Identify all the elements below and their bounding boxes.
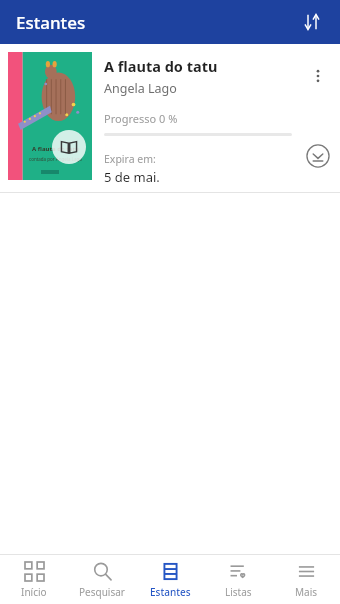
button[interactable]: Download [300, 138, 336, 174]
staticText: Estantes [16, 11, 86, 34]
staticText: Expira em: [104, 152, 156, 166]
button[interactable]: Estantes [136, 555, 204, 604]
staticText: Angela Lago [104, 80, 177, 97]
button[interactable]: A flauta do tatu [0, 44, 340, 192]
staticText: 5 de mai. [104, 168, 160, 184]
staticText: A flauta do tatu [104, 56, 218, 76]
button[interactable]: Listas [204, 555, 272, 604]
button[interactable]: Início [0, 555, 68, 604]
staticText: Pesquisar [79, 585, 125, 599]
button[interactable]: More options [300, 58, 336, 94]
button[interactable]: Mais [272, 555, 340, 604]
button[interactable]: Sort [294, 4, 330, 40]
staticText: Listas [225, 585, 252, 599]
button[interactable]: Pesquisar [68, 555, 136, 604]
staticText: Mais [295, 585, 318, 599]
staticText: A flauta do tatu [32, 145, 79, 153]
staticText: contada por Angela Lago [29, 156, 82, 162]
staticText: Início [21, 585, 47, 599]
staticText: Estantes [150, 585, 191, 599]
staticText: Progresso 0 % [104, 111, 178, 126]
